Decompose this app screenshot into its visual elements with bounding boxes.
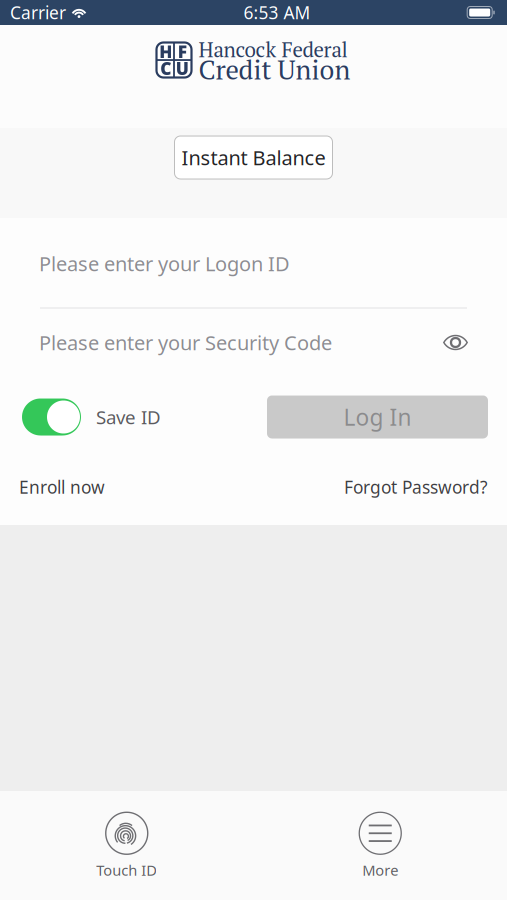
button[interactable]: Show Security Code	[443, 308, 468, 376]
staticText: 6:53 AM	[243, 1, 310, 24]
button[interactable]: More	[253, 791, 507, 900]
staticText: U	[176, 57, 189, 80]
button[interactable]: Please enter your Logon ID	[0, 219, 507, 307]
button[interactable]: Please enter your Security Code	[0, 308, 443, 376]
staticText: Forgot Password?	[344, 475, 488, 498]
staticText: Credit Union	[198, 52, 350, 87]
staticText: Please enter your Security Code	[39, 329, 332, 356]
staticText: Carrier	[10, 1, 66, 24]
staticText: Log In	[343, 402, 411, 432]
button[interactable]: Enroll now	[19, 475, 105, 498]
button[interactable]: Log In	[267, 395, 488, 438]
button[interactable]: Instant Balance	[174, 136, 332, 179]
staticText: F	[178, 40, 187, 63]
button[interactable]: Save ID	[22, 398, 161, 435]
staticText: Please enter your Logon ID	[39, 250, 290, 277]
staticText: Touch ID	[96, 860, 157, 880]
staticText: H	[159, 40, 172, 63]
staticText: Instant Balance	[181, 144, 325, 171]
button[interactable]: Touch ID	[0, 791, 253, 900]
button[interactable]: Forgot Password?	[344, 475, 488, 498]
staticText: Enroll now	[19, 475, 105, 498]
staticText: More	[362, 860, 398, 880]
staticText: Hancock Federal	[198, 36, 347, 63]
staticText: C	[160, 57, 171, 80]
staticText: Save ID	[96, 405, 161, 429]
